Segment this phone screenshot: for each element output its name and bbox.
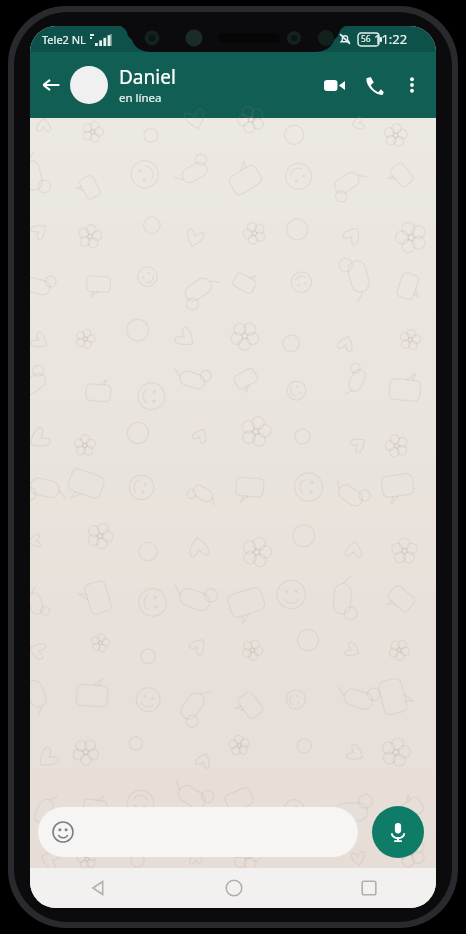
button[interactable]: Daniel bbox=[119, 64, 314, 106]
button[interactable]: Back bbox=[30, 868, 166, 908]
button[interactable]: Recent apps bbox=[301, 868, 436, 908]
button[interactable]: Voice call bbox=[354, 65, 394, 105]
button[interactable]: Home bbox=[166, 868, 301, 908]
button[interactable]: Record voice message bbox=[372, 806, 424, 858]
staticText: Daniel bbox=[119, 64, 176, 90]
button[interactable]: Back bbox=[34, 68, 68, 102]
button[interactable]: Profile photo bbox=[70, 66, 108, 104]
staticText: 11:22 bbox=[374, 30, 408, 48]
button[interactable]: Video call bbox=[314, 65, 354, 105]
button[interactable]: More options bbox=[394, 67, 430, 103]
button[interactable]: Emoji bbox=[38, 807, 358, 857]
staticText: 56 bbox=[361, 33, 371, 45]
staticText: en línea bbox=[119, 90, 162, 106]
staticText: Tele2 NL bbox=[42, 32, 86, 47]
button[interactable]: Emoji bbox=[50, 819, 76, 845]
